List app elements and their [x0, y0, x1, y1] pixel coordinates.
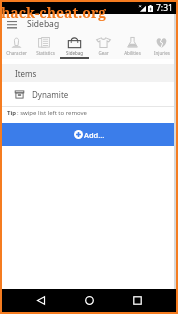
- button[interactable]: Gear: [89, 33, 118, 59]
- staticText: Sidebag: [66, 50, 83, 56]
- button[interactable]: Add...: [2, 123, 176, 146]
- button[interactable]: Dynamite: [2, 82, 176, 106]
- staticText: Sidebag: [27, 18, 60, 30]
- staticText: Statistics: [36, 50, 55, 56]
- button[interactable]: Character: [2, 33, 31, 59]
- staticText: Add...: [84, 130, 105, 140]
- staticText: : swipe list left to remove: [17, 109, 88, 117]
- staticText: hack-cheat.org: [1, 3, 107, 22]
- staticText: Abilities: [124, 50, 141, 56]
- button[interactable]: Recent apps: [113, 289, 161, 312]
- button[interactable]: Abilities: [118, 33, 147, 59]
- staticText: 7:31: [156, 2, 173, 14]
- staticText: Tip: [7, 109, 17, 117]
- button[interactable]: Home: [65, 289, 113, 312]
- button[interactable]: Statistics: [31, 33, 60, 59]
- staticText: Gear: [98, 50, 109, 56]
- staticText: Character: [6, 50, 27, 56]
- staticText: Dynamite: [32, 89, 69, 100]
- button[interactable]: Sidebag: [60, 33, 89, 59]
- button[interactable]: Open navigation drawer: [5, 17, 19, 31]
- button[interactable]: Injuries: [147, 33, 176, 59]
- staticText: Injuries: [154, 50, 170, 56]
- staticText: Items: [15, 68, 37, 79]
- button[interactable]: Back: [17, 289, 65, 312]
